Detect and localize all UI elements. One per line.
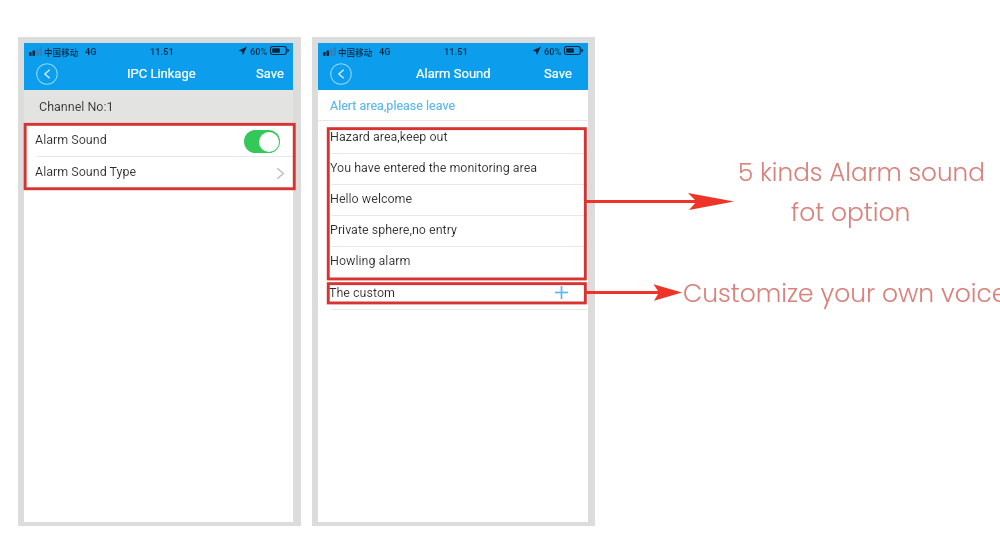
staticText: You have entered the monitoring area — [330, 160, 538, 175]
staticText: 5 kinds Alarm sound — [738, 155, 985, 190]
staticText: Save — [544, 66, 572, 81]
staticText: Alarm Sound — [416, 66, 491, 81]
button[interactable]: Alarm Sound on — [244, 130, 280, 153]
button[interactable]: Save — [247, 61, 291, 87]
staticText: 中国移动 — [338, 46, 373, 58]
button[interactable]: Back — [36, 63, 58, 85]
staticText: Customize your own voice — [683, 276, 1000, 311]
button[interactable]: Alert area,please leave — [318, 90, 588, 120]
button[interactable]: Add custom voice — [550, 281, 573, 303]
button[interactable]: Back — [330, 63, 352, 85]
staticText: Hazard area,keep out — [330, 129, 448, 144]
button[interactable]: Hello welcome — [318, 185, 588, 215]
button[interactable]: Alarm Sound — [24, 124, 293, 157]
staticText: IPC Linkage — [127, 66, 196, 81]
button[interactable]: Save — [535, 61, 579, 87]
staticText: Channel No:1 — [39, 99, 114, 114]
staticText: The custom — [329, 285, 396, 300]
staticText: 60% — [250, 46, 268, 57]
button[interactable]: The custom — [318, 282, 588, 304]
staticText: 4G — [379, 46, 391, 57]
staticText: 4G — [85, 46, 97, 57]
staticText: Save — [256, 66, 284, 81]
staticText: fot option — [791, 195, 911, 230]
button[interactable]: Private sphere,no entry — [318, 216, 588, 246]
staticText: 中国移动 — [44, 46, 79, 58]
button[interactable]: You have entered the monitoring area — [318, 154, 588, 184]
button[interactable]: Alarm Sound Type — [24, 157, 293, 188]
staticText: 11.51 — [444, 46, 468, 57]
staticText: 60% — [544, 46, 562, 57]
staticText: 11.51 — [150, 46, 174, 57]
staticText: Howling alarm — [330, 253, 411, 268]
staticText: Hello welcome — [330, 191, 413, 206]
staticText: Private sphere,no entry — [330, 222, 457, 237]
button[interactable]: Hazard area,keep out — [318, 128, 588, 154]
staticText: Alarm Sound Type — [35, 164, 137, 179]
staticText: Alarm Sound — [35, 132, 107, 147]
staticText: Alert area,please leave — [330, 98, 456, 113]
button[interactable]: Howling alarm — [318, 247, 588, 279]
